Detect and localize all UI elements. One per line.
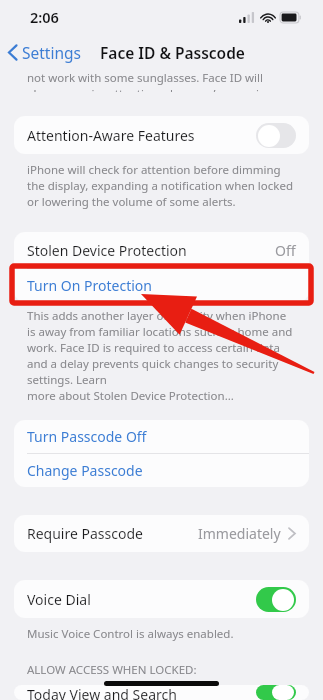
button[interactable]: Turn On Protection (14, 269, 309, 302)
staticText: Turn Passcode Off (27, 427, 147, 446)
button[interactable]: Stolen Device Protection (14, 232, 309, 268)
button[interactable]: Attention-Aware Features (14, 116, 309, 154)
staticText: Change Passcode (27, 461, 143, 480)
staticText: Turn On Protection (27, 276, 152, 295)
staticText: Music Voice Control is always enabled. (27, 626, 234, 642)
staticText: Immediately (198, 524, 281, 543)
button[interactable]: Voice Dial (14, 580, 309, 618)
button[interactable]: Require Passcode (14, 515, 309, 552)
staticText: This adds another layer of security when… (27, 308, 296, 388)
staticText: ALLOW ACCESS WHEN LOCKED: (27, 662, 197, 678)
staticText: Off (275, 241, 296, 260)
button[interactable]: Back to Settings (8, 42, 81, 63)
button[interactable]: Switch off (256, 123, 296, 148)
staticText: Voice Dial (27, 590, 91, 609)
staticText: before authenticating. Attention detecti… (27, 70, 296, 92)
staticText: Stolen Device Protection (27, 241, 187, 260)
staticText: iPhone will check for attention before d… (27, 162, 296, 210)
button[interactable]: Switch on (256, 587, 296, 612)
staticText: more about Stolen Device Protection… (27, 388, 234, 404)
button[interactable]: Today View and Search (14, 685, 309, 700)
staticText: Face ID & Passcode (100, 42, 245, 63)
staticText: Attention-Aware Features (27, 126, 195, 145)
button[interactable]: Turn Passcode Off (14, 420, 309, 453)
staticText: 2:06 (30, 7, 59, 27)
staticText: Require Passcode (27, 524, 143, 543)
button[interactable]: Change Passcode (14, 454, 309, 487)
button[interactable]: Switch on (256, 685, 296, 700)
staticText: Today View and Search (27, 685, 177, 700)
staticText: Settings (22, 42, 81, 63)
